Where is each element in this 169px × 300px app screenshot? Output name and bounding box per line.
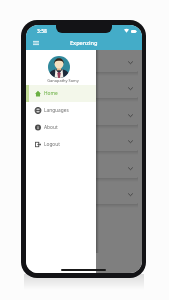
button[interactable]	[30, 50, 138, 72]
staticText: Languages	[44, 107, 69, 114]
button[interactable]	[30, 156, 138, 178]
staticText: Ganapathy Samy	[47, 78, 79, 83]
button[interactable]	[30, 182, 138, 204]
button[interactable]	[30, 103, 138, 125]
staticText: Home	[44, 90, 58, 97]
staticText: About	[44, 124, 58, 131]
button[interactable]: Home	[26, 85, 96, 102]
staticText: Expenzing	[70, 39, 98, 47]
staticText: Logout	[44, 141, 60, 148]
button[interactable]: Logout	[26, 136, 96, 153]
staticText: 3:58	[37, 28, 47, 35]
button[interactable]: About	[26, 119, 96, 136]
button[interactable]	[30, 129, 138, 151]
button[interactable]: Open navigation drawer	[30, 37, 41, 48]
button[interactable]	[30, 76, 138, 98]
button[interactable]: Languages	[26, 102, 96, 119]
